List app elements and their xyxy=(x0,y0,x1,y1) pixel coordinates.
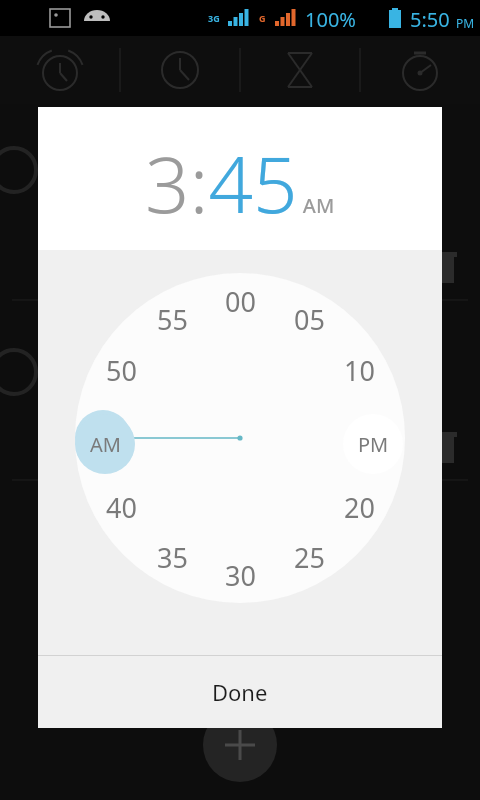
staticText: PM xyxy=(456,15,475,31)
staticText: Done xyxy=(212,677,268,707)
staticText: 40 xyxy=(106,489,137,526)
staticText: G xyxy=(259,12,266,24)
staticText: 15 xyxy=(362,420,393,457)
staticText: 5:50 xyxy=(410,6,450,33)
staticText: 3G xyxy=(208,12,220,24)
staticText: 3:45 AM xyxy=(145,130,335,236)
staticText: 30 xyxy=(225,557,256,594)
staticText: 55 xyxy=(157,301,188,338)
button[interactable]: 20 xyxy=(333,487,385,527)
button[interactable]: 30 xyxy=(214,555,266,595)
button[interactable]: Done xyxy=(38,656,442,728)
staticText: PM xyxy=(358,431,389,458)
button[interactable]: 55 xyxy=(146,299,198,339)
button[interactable]: 00 xyxy=(214,281,266,321)
button[interactable]: 10 xyxy=(333,350,385,390)
staticText: 10 xyxy=(344,352,375,389)
staticText: 35 xyxy=(157,539,188,576)
button[interactable]: 15 xyxy=(351,418,403,458)
staticText: 00 xyxy=(225,283,256,320)
staticText: AM xyxy=(90,431,121,458)
staticText: 50 xyxy=(106,352,137,389)
staticText: 45 xyxy=(88,420,119,457)
staticText: 20 xyxy=(344,489,375,526)
button[interactable]: AM xyxy=(75,414,135,474)
button[interactable]: 50 xyxy=(95,350,147,390)
button[interactable]: 40 xyxy=(95,487,147,527)
button[interactable]: 25 xyxy=(283,537,335,577)
button[interactable]: Add alarm xyxy=(203,708,277,782)
staticText: 05 xyxy=(294,301,325,338)
button[interactable]: PM xyxy=(343,414,403,474)
staticText: 25 xyxy=(294,539,325,576)
button[interactable]: 35 xyxy=(146,537,198,577)
button[interactable]: 05 xyxy=(283,299,335,339)
staticText: 100% xyxy=(305,6,356,33)
button[interactable]: 45 xyxy=(77,418,129,458)
